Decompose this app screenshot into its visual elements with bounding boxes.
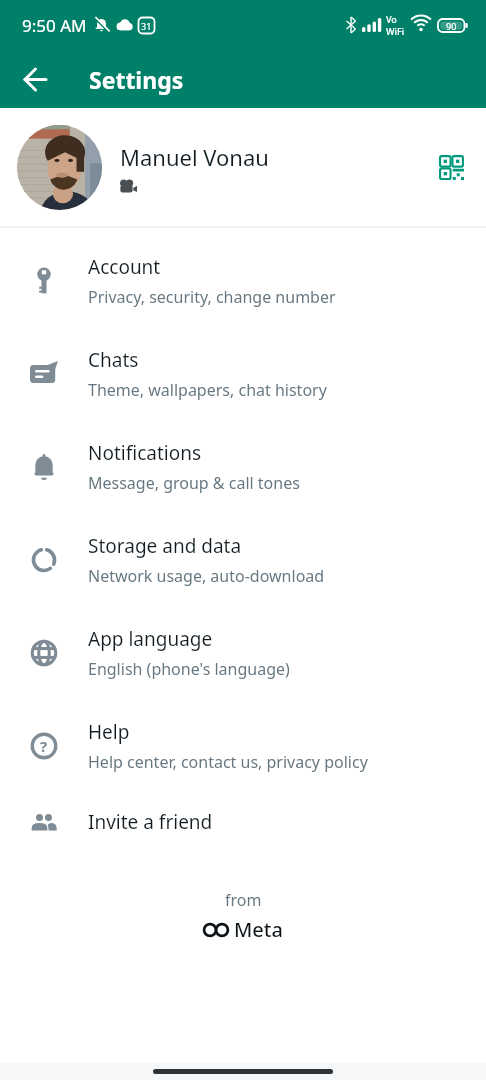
staticText: Chats xyxy=(88,347,139,373)
button[interactable] xyxy=(12,56,58,102)
staticText: Manuel Vonau xyxy=(120,142,269,172)
staticText: Meta xyxy=(234,916,283,943)
staticText: from xyxy=(225,889,262,911)
staticText: 90 xyxy=(446,20,457,32)
staticText: Invite a friend xyxy=(88,809,213,835)
staticText: Network usage, auto-download xyxy=(88,565,325,587)
button[interactable]: Storage and data xyxy=(0,513,486,606)
staticText: WiFi xyxy=(386,25,405,37)
staticText: Account xyxy=(88,254,161,280)
button[interactable]: Account xyxy=(0,234,486,327)
staticText: Help xyxy=(88,719,130,745)
staticText: Theme, wallpapers, chat history xyxy=(88,379,327,401)
staticText: Vo xyxy=(386,13,397,25)
button[interactable]: Invite a friend xyxy=(0,792,486,852)
staticText: English (phone's language) xyxy=(88,658,290,680)
staticText: 31 xyxy=(141,20,152,32)
staticText: Message, group & call tones xyxy=(88,472,300,494)
staticText: App language xyxy=(88,626,213,652)
staticText: 9:50 AM xyxy=(22,14,87,37)
staticText: Storage and data xyxy=(88,533,242,559)
button[interactable]: App language xyxy=(0,606,486,699)
staticText: Settings xyxy=(89,64,184,95)
button[interactable] xyxy=(423,139,479,195)
staticText: Help center, contact us, privacy policy xyxy=(88,751,368,773)
button[interactable]: ? xyxy=(0,699,486,792)
button[interactable]: Chats xyxy=(0,327,486,420)
staticText: Privacy, security, change number xyxy=(88,286,336,308)
staticText: ? xyxy=(40,736,48,756)
button[interactable]: Manuel Vonau xyxy=(0,108,486,226)
button[interactable]: Notifications xyxy=(0,420,486,513)
staticText: Notifications xyxy=(88,440,202,466)
